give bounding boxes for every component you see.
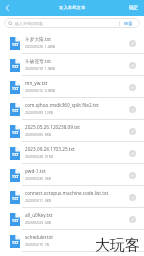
button[interactable]: 搜索 [120,21,140,26]
staticText: TXT [12,42,19,47]
button[interactable]: TXT [0,32,144,54]
button[interactable]: TXT [0,186,144,208]
staticText: 2023/03/20 3KB [25,176,52,181]
staticText: 大玩客 [95,236,140,255]
staticText: TXT [12,86,19,91]
staticText: 确定 [129,5,139,11]
staticText: 2023/05/20 1.2MB [25,44,55,49]
staticText: 斗罗大陆.txt [25,36,51,42]
button[interactable]: TXT [0,230,144,252]
button[interactable]: TXT [0,120,144,142]
staticText: scheduler.txt [25,234,53,240]
button[interactable]: TXT [0,54,144,76]
staticText: 2023.09.28.1703.25.txt [25,146,75,152]
staticText: connect.octopus.machine.code.list.txt [25,190,109,196]
staticText: 2023/03/28 21KB [25,154,53,159]
button[interactable]: Back [0,1,14,15]
staticText: com.qihoo.msdk360_split.file2.txt [25,102,99,108]
staticText: TXT [12,108,19,113]
staticText: 2023/03/11 4KB [25,198,52,203]
staticText: TXT [12,196,19,201]
staticText: TXT [12,240,19,245]
staticText: 2023/05/09 12KB [25,110,53,115]
staticText: TXT [12,152,19,157]
staticText: 2023/05/12 0.3MB [25,88,55,93]
button[interactable]: 确定 [125,3,144,13]
staticText: 2023/05/05 8KB [25,132,52,137]
staticText: 搜索 [124,21,133,26]
staticText: 2023/02/15 7B [25,242,49,247]
staticText: 2023/05/18 1.9MB [25,66,55,71]
button[interactable]: TXT [0,142,144,164]
staticText: TXT [12,218,19,223]
staticText: TXT [12,64,19,69]
staticText: TXT [12,174,19,179]
staticText: 斗破苍穹.txt [25,58,51,64]
staticText: 2025.05.26.120238.09.txt [25,124,81,130]
staticText: 导入本机文本 [59,5,86,11]
staticText: 输入关键词搜索 [15,21,43,26]
staticText: pwd-1.txt [25,168,46,174]
button[interactable]: TXT [0,208,144,230]
button[interactable]: TXT [0,98,144,120]
staticText: TXT [12,130,19,135]
staticText: mn_yw.txt [25,80,48,86]
button[interactable]: TXT [0,164,144,186]
staticText: 2023/02/23 44B [25,220,51,225]
button[interactable]: TXT [0,76,144,98]
staticText: all_u0Key.txt [25,212,53,218]
